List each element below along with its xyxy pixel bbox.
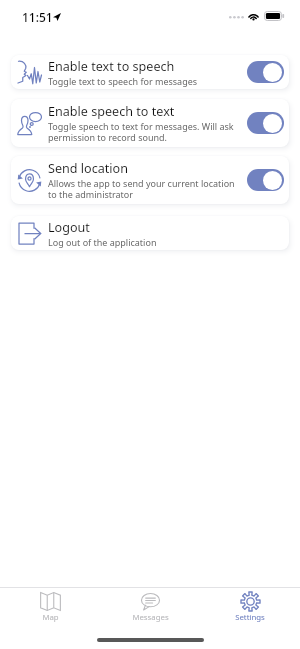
button[interactable]: Enable speech to text [11,99,289,147]
staticText: Map [42,612,59,623]
button[interactable]: Send location [11,156,289,204]
staticText: Log out of the application [48,236,157,248]
staticText: Toggle text to speech for messages [48,75,198,87]
staticText: Toggle speech to text for messages. Will… [48,120,241,144]
staticText: Messages [132,612,169,623]
staticText: Allows the app to send your current loca… [48,177,241,201]
staticText: 11:51 [22,9,53,25]
staticText: Settings [235,612,265,623]
button[interactable]: Messages [100,588,200,627]
button[interactable]: Toggle setting [247,169,284,191]
button[interactable]: Toggle setting [247,112,284,134]
staticText: Logout [48,219,90,236]
staticText: Enable speech to text [48,103,175,120]
staticText: Enable text to speech [48,58,175,75]
staticText: Send location [48,160,128,177]
button[interactable]: Logout [11,216,289,250]
button[interactable]: Toggle setting [247,61,284,83]
button[interactable]: Settings [200,588,300,627]
button[interactable]: Enable text to speech [11,55,289,89]
button[interactable]: Map [0,588,100,627]
